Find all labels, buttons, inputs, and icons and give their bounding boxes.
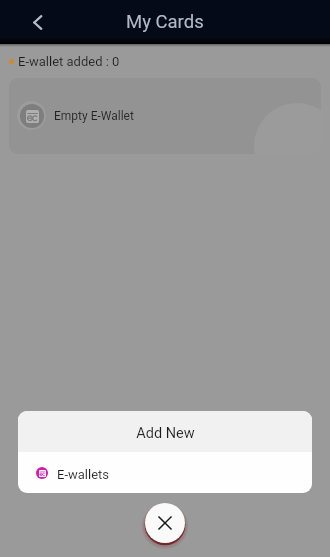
button[interactable]: Empty E-Wallet (9, 78, 321, 154)
staticText: Add New (136, 425, 195, 442)
staticText: E-wallets (57, 467, 109, 482)
button[interactable]: Back (22, 7, 52, 37)
button[interactable]: E-wallets (18, 452, 312, 493)
staticText: Empty E-Wallet (54, 109, 134, 123)
staticText: My Cards (126, 11, 204, 33)
button[interactable]: Close (145, 503, 185, 543)
staticText: E-wallet added : 0 (18, 54, 120, 69)
